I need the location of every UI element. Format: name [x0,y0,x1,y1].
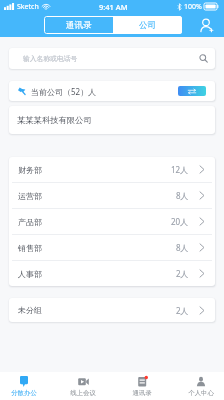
staticText: 个人中心 [188,389,214,397]
staticText: 12人 [171,164,189,175]
button[interactable]: 分散办公 [0,372,53,400]
staticText: 销售部 [18,243,42,253]
staticText: 100% [184,2,202,12]
staticText: 输入名称或电话号 [23,54,78,63]
button[interactable]: 财务部 [9,157,215,182]
staticText: 2人 [176,268,189,279]
button[interactable]: Add contact [195,14,218,37]
staticText: 2人 [176,305,189,316]
button[interactable]: 个人中心 [171,372,224,400]
button[interactable]: 销售部 [9,235,215,260]
button[interactable]: 未分组 [9,298,215,322]
staticText: 未分组 [18,305,42,315]
staticText: 产品部 [18,217,42,227]
staticText: 9:41 AM [99,2,128,12]
staticText: 通讯录 [132,389,152,397]
button[interactable]: 人事部 [9,261,215,286]
staticText: 财务部 [18,165,42,175]
button[interactable]: 通讯录 [44,16,113,34]
staticText: 8人 [176,190,189,201]
button[interactable]: 运营部 [9,183,215,208]
button[interactable]: 线上会议 [53,372,112,400]
staticText: 公司 [139,20,156,31]
staticText: 通讯录 [66,20,92,31]
staticText: 分散办公 [11,389,37,397]
staticText: 20人 [171,216,189,227]
button[interactable]: Switch company [178,86,206,96]
button[interactable]: 通讯录 [112,372,171,400]
staticText: 线上会议 [70,389,96,397]
staticText: Sketch [17,2,39,12]
staticText: 某某某科技有限公司 [17,115,92,125]
staticText: 当前公司（52）人 [31,86,97,97]
staticText: 运营部 [18,191,42,201]
button[interactable]: 当前公司（52）人 [9,81,215,101]
staticText: 8人 [176,242,189,253]
button[interactable]: 某某某科技有限公司 [9,106,215,134]
button[interactable]: 产品部 [9,209,215,234]
button[interactable]: 公司 [113,16,182,34]
staticText: 人事部 [18,269,42,279]
button[interactable]: 输入名称或电话号 [9,48,215,69]
